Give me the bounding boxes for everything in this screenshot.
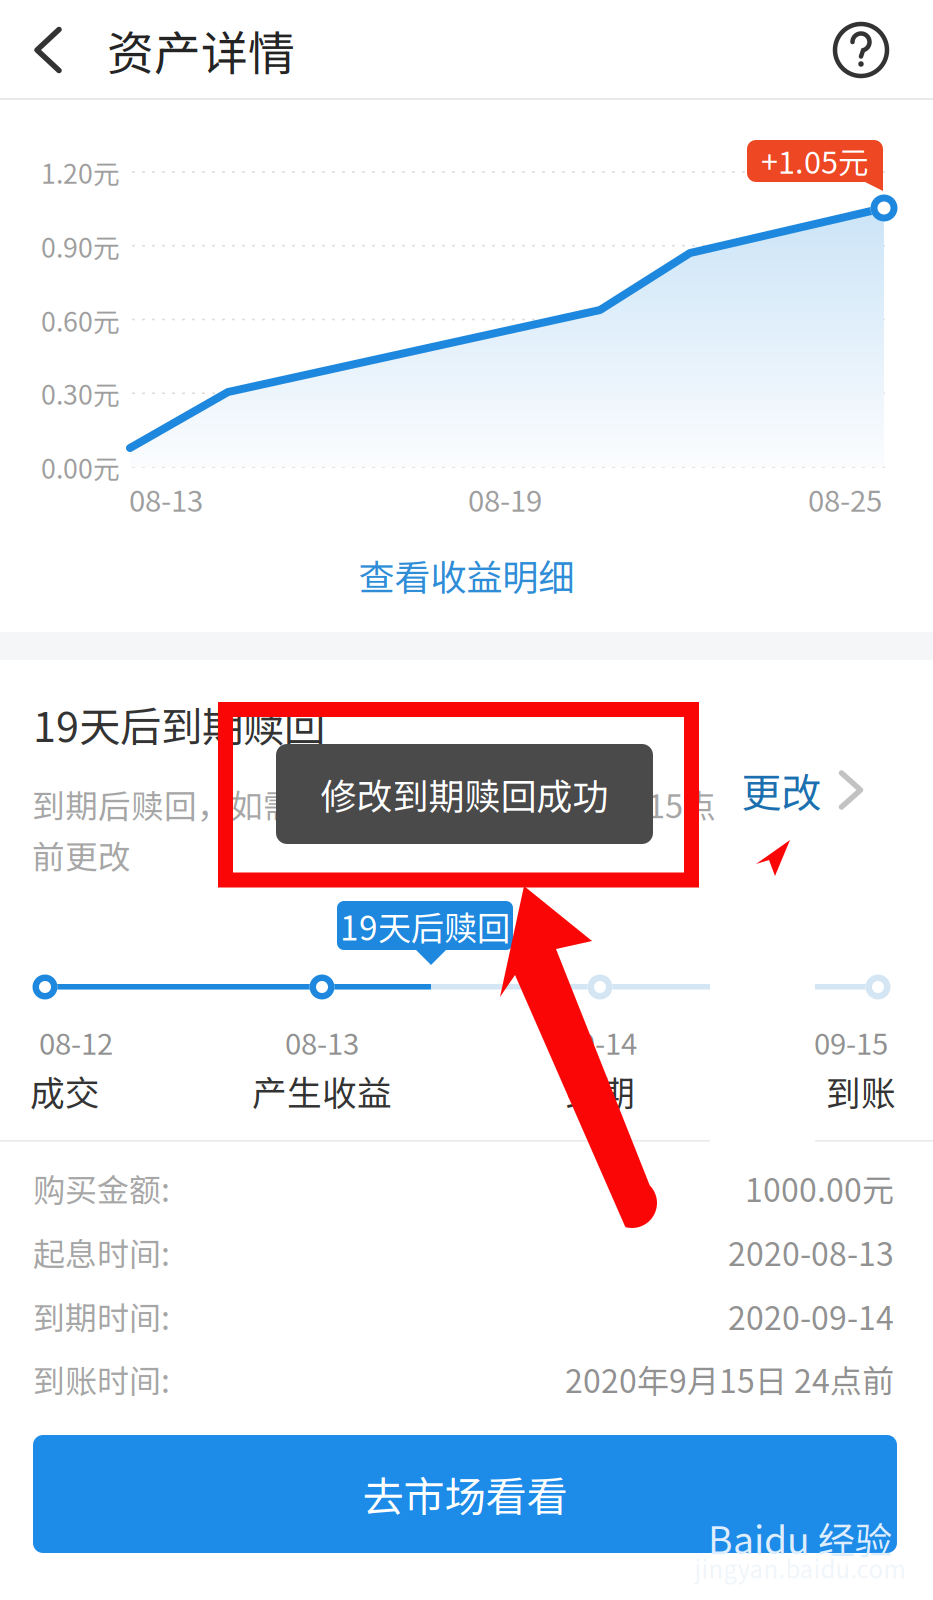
staticText: 0.60元	[41, 301, 120, 339]
button[interactable]: 更改	[706, 744, 896, 836]
staticText: 09-15	[814, 1021, 888, 1063]
staticText: 08-13	[285, 1021, 359, 1063]
button[interactable]: Back	[0, 0, 96, 100]
staticText: 08-19	[468, 478, 542, 520]
staticText: 2020-08-13	[728, 1229, 894, 1275]
staticText: 到期	[565, 1066, 635, 1116]
staticText: 前更改	[32, 831, 131, 879]
staticText: 1.20元	[41, 153, 120, 191]
staticText: 起息时间:	[33, 1229, 170, 1275]
staticText: 19天后到期赎回	[33, 694, 325, 754]
staticText: 2020-09-14	[728, 1293, 894, 1339]
staticText: 08-25	[808, 478, 882, 520]
staticText: 购买金额:	[33, 1165, 170, 1211]
staticText: +1.05元	[761, 138, 869, 183]
staticText: 08-12	[39, 1021, 113, 1063]
staticText: Baidu 经验	[708, 1511, 892, 1565]
button[interactable]: 查看收益明细	[0, 532, 933, 618]
button[interactable]: 去市场看看	[33, 1435, 897, 1553]
staticText: 到账时间:	[33, 1356, 170, 1402]
staticText: 到期时间:	[33, 1293, 170, 1339]
staticText: 到账	[826, 1066, 896, 1116]
staticText: jingyan.baidu.com	[694, 1551, 905, 1585]
staticText: 成交	[30, 1066, 100, 1116]
staticText: 到期后赎回，如需自动续期，请于9月10日15点	[32, 780, 716, 828]
staticText: 去市场看看	[362, 1464, 567, 1524]
staticText: 0.00元	[41, 448, 120, 486]
staticText: 查看收益明细	[358, 549, 574, 601]
button[interactable]: Help	[813, 0, 909, 100]
staticText: 2020年9月15日 24点前	[565, 1356, 894, 1402]
staticText: 08-13	[129, 478, 203, 520]
staticText: 1000.00元	[745, 1165, 894, 1211]
staticText: 09-14	[563, 1021, 637, 1063]
staticText: 修改到期赎回成功	[320, 768, 608, 820]
staticText: 0.90元	[41, 227, 120, 265]
staticText: 资产详情	[107, 16, 295, 84]
staticText: 19天后赎回	[340, 902, 510, 950]
staticText: 产生收益	[252, 1066, 392, 1116]
staticText: 0.30元	[41, 374, 120, 412]
staticText: 更改	[741, 761, 821, 819]
